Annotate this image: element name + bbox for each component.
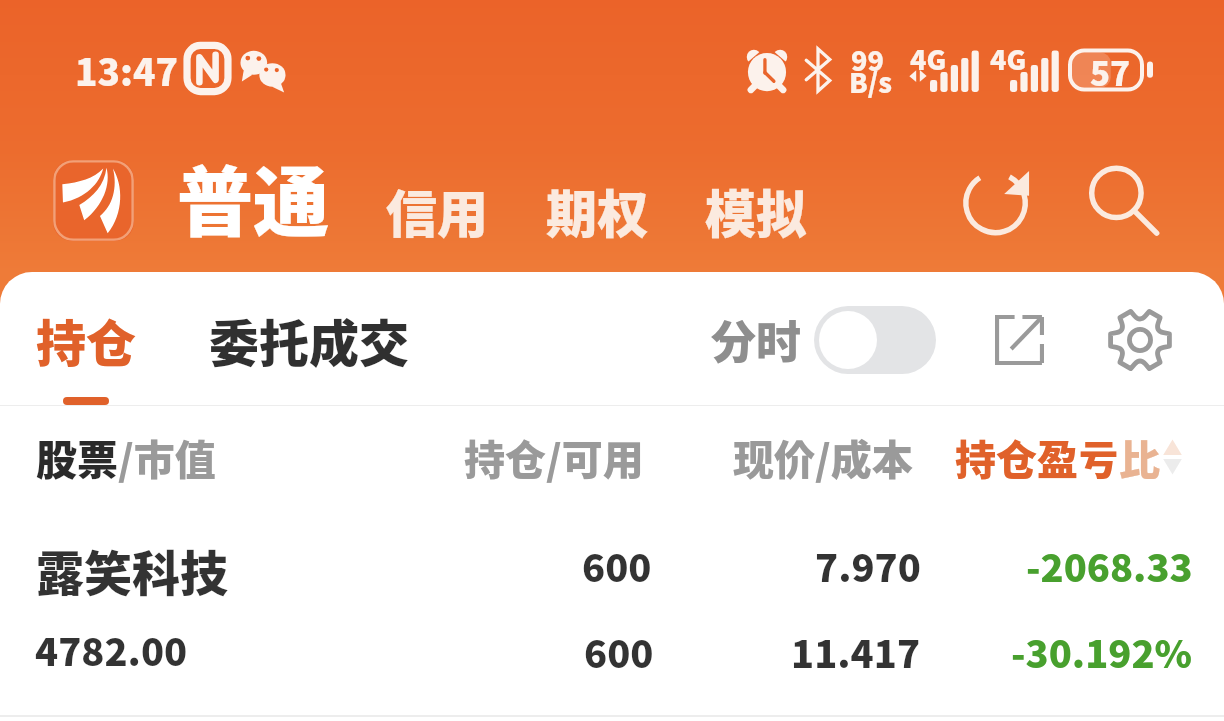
- staticText: 持仓盈亏: [955, 427, 1119, 486]
- button[interactable]: Toggle time-sharing chart: [814, 306, 936, 374]
- staticText: 比: [1119, 427, 1160, 486]
- staticText: 现价/成本: [733, 427, 913, 486]
- staticText: 600: [584, 624, 654, 679]
- button[interactable]: Search: [1081, 159, 1167, 245]
- button[interactable]: 期权: [546, 174, 649, 248]
- staticText: 露笑科技: [36, 535, 229, 605]
- button[interactable]: 露笑科技: [0, 507, 1224, 715]
- staticText: 11.417: [791, 624, 921, 679]
- staticText: 99: [851, 40, 884, 79]
- button[interactable]: 分时: [711, 307, 802, 372]
- staticText: 4G: [910, 39, 947, 78]
- staticText: 600: [582, 538, 652, 593]
- button[interactable]: 普通: [177, 142, 329, 252]
- staticText: 13:47: [75, 43, 179, 97]
- staticText: B/s: [849, 62, 892, 101]
- button[interactable]: Refresh: [954, 160, 1040, 246]
- staticText: -30.192%: [1011, 624, 1193, 679]
- staticText: -2068.33: [1026, 538, 1193, 593]
- button[interactable]: 委托成交: [209, 304, 409, 376]
- button[interactable]: App logo: [53, 160, 134, 241]
- button[interactable]: 信用: [386, 174, 489, 248]
- button[interactable]: Share: [977, 298, 1061, 382]
- staticText: 持仓/可用: [464, 427, 644, 486]
- button[interactable]: Settings: [1098, 298, 1182, 382]
- button[interactable]: 模拟: [705, 174, 808, 248]
- staticText: /市值: [118, 427, 216, 486]
- staticText: 7.970: [815, 538, 921, 593]
- staticText: 股票: [36, 427, 118, 486]
- staticText: 57: [1090, 48, 1131, 92]
- button[interactable]: 持仓: [36, 304, 136, 376]
- staticText: 4G: [990, 39, 1027, 78]
- staticText: 4782.00: [35, 622, 188, 677]
